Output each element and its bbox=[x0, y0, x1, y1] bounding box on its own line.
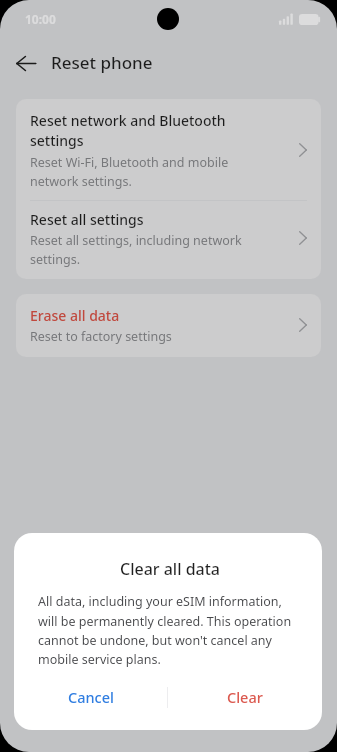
button[interactable]: Reset network and Bluetooth settings bbox=[16, 99, 321, 200]
staticText: Reset all settings, including network se… bbox=[30, 232, 252, 268]
staticText: Clear bbox=[227, 687, 263, 707]
button[interactable]: Clear bbox=[168, 677, 322, 717]
staticText: 10:00 bbox=[25, 11, 56, 27]
staticText: Reset to factory settings bbox=[30, 328, 172, 345]
staticText: Reset Wi-Fi, Bluetooth and mobile networ… bbox=[30, 154, 252, 190]
staticText: Reset phone bbox=[51, 51, 153, 74]
button[interactable]: Erase all data bbox=[16, 294, 321, 357]
staticText: Reset network and Bluetooth settings bbox=[30, 111, 252, 151]
staticText: Reset all settings bbox=[30, 210, 144, 229]
button[interactable]: Back bbox=[9, 47, 42, 80]
staticText: Erase all data bbox=[30, 306, 120, 325]
button[interactable]: Reset all settings bbox=[16, 201, 321, 279]
staticText: Cancel bbox=[68, 687, 114, 707]
staticText: Clear all data bbox=[16, 558, 322, 580]
button[interactable]: Cancel bbox=[14, 677, 167, 717]
staticText: All data, including your eSIM informatio… bbox=[38, 593, 296, 668]
